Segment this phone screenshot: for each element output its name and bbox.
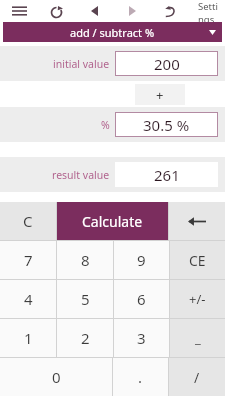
- staticText: Calculate: [82, 212, 143, 231]
- button[interactable]: 4: [0, 280, 56, 318]
- staticText: 7: [24, 250, 33, 270]
- button[interactable]: /: [169, 358, 225, 396]
- staticText: 5: [81, 289, 90, 309]
- button[interactable]: 7: [0, 241, 56, 279]
- button[interactable]: 5: [57, 280, 113, 318]
- staticText: 6: [137, 289, 146, 309]
- button[interactable]: 261: [115, 162, 218, 187]
- button[interactable]: Refresh: [38, 0, 75, 22]
- button[interactable]: 3: [114, 319, 169, 357]
- button[interactable]: 0: [0, 358, 112, 396]
- staticText: 0: [52, 367, 61, 387]
- button[interactable]: .: [113, 358, 168, 396]
- button[interactable]: CE: [170, 241, 225, 279]
- button[interactable]: 9: [114, 241, 169, 279]
- button[interactable]: Menu: [0, 0, 38, 22]
- staticText: CE: [189, 251, 206, 270]
- staticText: /: [194, 368, 200, 387]
- button[interactable]: Next: [113, 0, 151, 22]
- staticText: Settings: [198, 0, 220, 22]
- button[interactable]: 1: [0, 319, 56, 357]
- staticText: 8: [81, 250, 90, 270]
- staticText: 1: [24, 328, 33, 348]
- staticText: .: [138, 367, 143, 387]
- staticText: %: [101, 118, 110, 132]
- staticText: 2: [81, 328, 90, 348]
- button[interactable]: 6: [114, 280, 169, 318]
- button[interactable]: 30.5 %: [115, 112, 218, 137]
- staticText: 200: [154, 54, 180, 74]
- staticText: +: [156, 86, 164, 104]
- button[interactable]: 8: [57, 241, 113, 279]
- button[interactable]: Undo: [151, 0, 189, 22]
- staticText: 261: [154, 165, 180, 185]
- staticText: 9: [137, 250, 146, 270]
- staticText: 4: [24, 289, 33, 309]
- button[interactable]: Settings: [193, 0, 225, 22]
- staticText: 30.5 %: [143, 115, 190, 135]
- button[interactable]: Backspace: [169, 202, 225, 240]
- button[interactable]: +: [135, 84, 185, 105]
- button[interactable]: C: [0, 202, 56, 240]
- button[interactable]: add / subtract %: [3, 22, 222, 42]
- staticText: 3: [137, 328, 146, 348]
- staticText: result value: [52, 168, 110, 182]
- staticText: +/-: [189, 290, 206, 308]
- staticText: add / subtract %: [70, 25, 155, 40]
- button[interactable]: Previous: [75, 0, 113, 22]
- staticText: initial value: [53, 57, 110, 71]
- button[interactable]: 2: [57, 319, 113, 357]
- staticText: _: [195, 329, 201, 347]
- button[interactable]: +/-: [170, 280, 225, 318]
- button[interactable]: 200: [115, 51, 218, 76]
- button[interactable]: Calculate: [57, 202, 168, 240]
- button[interactable]: _: [170, 319, 225, 357]
- staticText: C: [23, 211, 33, 231]
